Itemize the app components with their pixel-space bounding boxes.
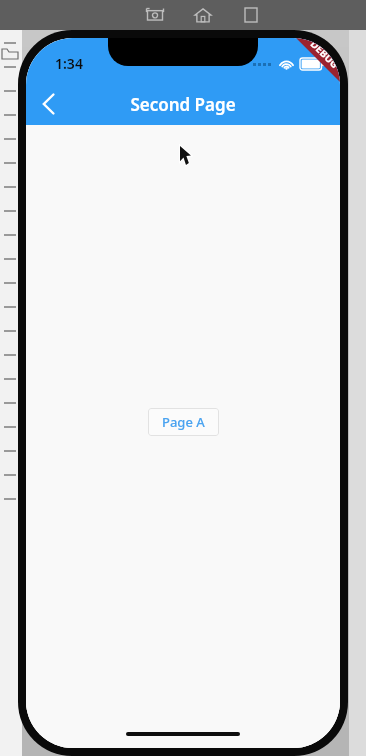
staticText: 1:34 (55, 54, 83, 73)
button[interactable]: Screenshot (142, 2, 168, 28)
staticText: Page A (162, 413, 205, 431)
button[interactable]: Recents (238, 2, 264, 28)
staticText: DEBUG (308, 38, 340, 71)
staticText: Second Page (130, 93, 236, 116)
button[interactable]: Back (26, 83, 70, 125)
button[interactable]: Home (190, 2, 216, 28)
button[interactable]: Page A (148, 408, 219, 436)
